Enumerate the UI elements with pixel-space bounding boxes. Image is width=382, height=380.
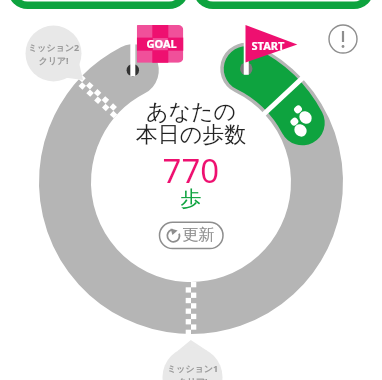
button[interactable] [159,222,224,249]
button[interactable]: Information [329,25,357,53]
